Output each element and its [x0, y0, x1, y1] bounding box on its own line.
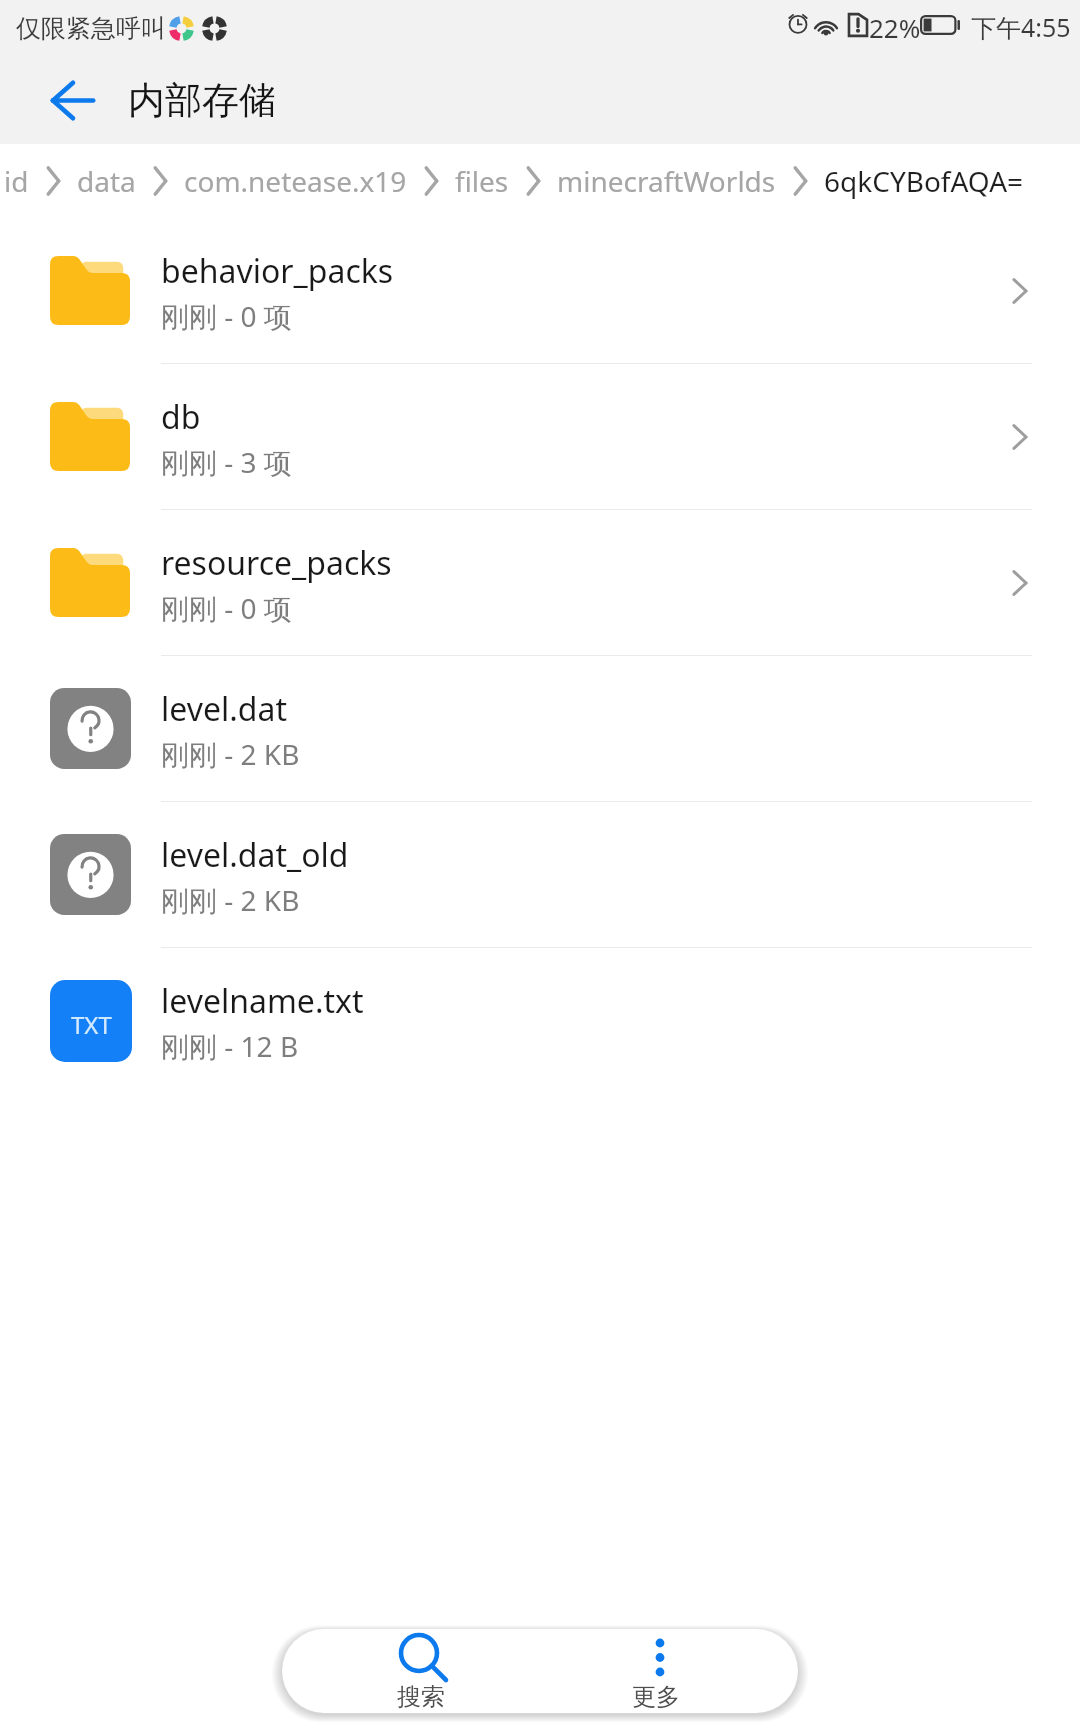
button[interactable]: 搜索 — [331, 1629, 511, 1713]
staticText: 内部存储 — [128, 77, 276, 124]
button[interactable]: minecraftWorlds — [557, 162, 776, 200]
staticText: TXT — [71, 1008, 112, 1041]
staticText: 刚刚 - 12 B — [161, 1027, 299, 1065]
staticText: resource_packs — [161, 541, 392, 585]
other: Open — [1000, 417, 1040, 457]
staticText: behavior_packs — [161, 249, 394, 293]
button[interactable]: 6qkCYBofAQA= — [824, 162, 1024, 200]
button[interactable]: level.dat_old — [0, 802, 1080, 947]
button[interactable]: behavior_packs — [0, 218, 1080, 363]
staticText: level.dat — [161, 687, 287, 731]
button[interactable]: level.dat — [0, 656, 1080, 801]
button[interactable]: db — [0, 364, 1080, 509]
button[interactable]: com.netease.x19 — [184, 162, 407, 200]
button[interactable]: Back — [31, 58, 115, 142]
staticText: 刚刚 - 2 KB — [161, 881, 300, 919]
staticText: 刚刚 - 0 项 — [161, 589, 292, 627]
button[interactable]: resource_packs — [0, 510, 1080, 655]
staticText: 搜索 — [381, 1682, 461, 1712]
button[interactable]: TXT — [0, 948, 1080, 1093]
staticText: levelname.txt — [161, 979, 364, 1023]
staticText: level.dat_old — [161, 833, 349, 877]
staticText: db — [161, 395, 201, 439]
staticText: 下午4:55 — [971, 10, 1071, 44]
staticText: 更多 — [616, 1682, 696, 1712]
button[interactable]: 更多 — [566, 1629, 746, 1713]
staticText: 仅限紧急呼叫 — [16, 13, 166, 44]
button[interactable]: data — [77, 162, 136, 200]
staticText: 22% — [869, 10, 921, 45]
other: Open — [1000, 563, 1040, 603]
staticText: 刚刚 - 2 KB — [161, 735, 300, 773]
other: Open — [1000, 271, 1040, 311]
button[interactable]: files — [455, 162, 509, 200]
staticText: 刚刚 - 0 项 — [161, 297, 292, 335]
staticText: 刚刚 - 3 项 — [161, 443, 292, 481]
button[interactable]: id — [4, 162, 29, 200]
